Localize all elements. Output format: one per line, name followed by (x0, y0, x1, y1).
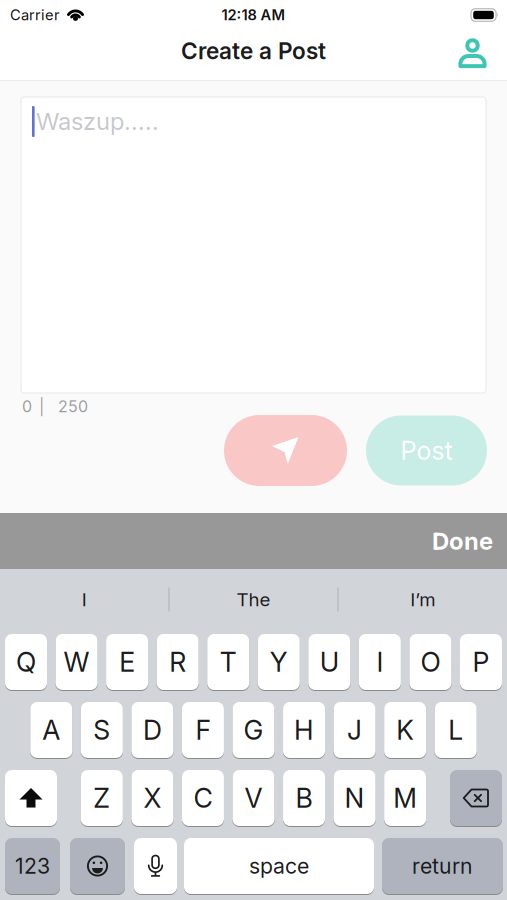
staticText: Post (400, 436, 452, 465)
staticText: J (347, 714, 362, 746)
button[interactable]: S (81, 702, 123, 758)
button[interactable]: M (384, 770, 426, 826)
staticText: Q (16, 646, 36, 678)
button[interactable]: B (283, 770, 325, 826)
button[interactable]: Post (366, 415, 487, 485)
staticText: X (143, 782, 161, 814)
staticText: Carrier (10, 6, 60, 24)
button[interactable]: Delete (450, 770, 502, 826)
staticText: return (412, 853, 473, 879)
staticText: N (345, 782, 365, 814)
button[interactable]: D (131, 702, 173, 758)
staticText: V (244, 782, 262, 814)
button[interactable]: W (56, 634, 98, 690)
button[interactable]: Done (432, 527, 493, 555)
staticText: I (82, 588, 87, 610)
staticText: U (320, 646, 339, 678)
button[interactable]: F (182, 702, 224, 758)
staticText: 123 (15, 853, 50, 879)
staticText: Waszup..... (36, 107, 159, 135)
staticText: R (169, 646, 186, 678)
button[interactable]: H (283, 702, 325, 758)
button[interactable]: Q (5, 634, 47, 690)
button[interactable]: Y (258, 634, 300, 690)
button[interactable]: Numbers (5, 838, 60, 894)
staticText: D (143, 714, 162, 746)
button[interactable]: Emoji (70, 838, 125, 894)
staticText: B (295, 782, 312, 814)
button[interactable]: P (460, 634, 502, 690)
button[interactable]: A (30, 702, 72, 758)
staticText: T (220, 646, 237, 678)
button[interactable]: Dictation (134, 838, 177, 894)
staticText: O (420, 646, 440, 678)
staticText: I (376, 646, 383, 678)
button[interactable]: N (334, 770, 376, 826)
button[interactable]: Z (81, 770, 123, 826)
staticText: I’m (410, 588, 435, 610)
staticText: C (193, 782, 212, 814)
staticText: Z (93, 782, 110, 814)
staticText: S (93, 714, 110, 746)
staticText: 250 (58, 397, 88, 416)
staticText: F (195, 714, 210, 746)
staticText: Y (270, 646, 288, 678)
staticText: G (243, 714, 263, 746)
button[interactable]: J (334, 702, 376, 758)
staticText: W (64, 646, 90, 678)
button[interactable]: Profile (458, 37, 487, 68)
button[interactable]: C (182, 770, 224, 826)
button[interactable]: T (207, 634, 249, 690)
staticText: | (39, 397, 44, 416)
button[interactable]: X (131, 770, 173, 826)
button[interactable]: K (384, 702, 426, 758)
staticText: L (448, 714, 463, 746)
staticText: Done (432, 527, 493, 555)
button[interactable]: G (232, 702, 274, 758)
staticText: A (42, 714, 60, 746)
staticText: 12:18 AM (221, 6, 285, 24)
staticText: P (472, 646, 489, 678)
staticText: Create a Post (181, 38, 326, 64)
button[interactable]: L (435, 702, 477, 758)
button[interactable]: space (184, 838, 374, 894)
button[interactable]: I (359, 634, 401, 690)
button[interactable]: U (308, 634, 350, 690)
button[interactable]: O (409, 634, 451, 690)
staticText: M (393, 782, 417, 814)
staticText: The (236, 588, 270, 610)
button[interactable]: Shift (5, 770, 57, 826)
button[interactable]: I’m (338, 569, 507, 630)
button[interactable]: Send (224, 415, 347, 486)
button[interactable]: return (382, 838, 503, 894)
button[interactable]: The (169, 569, 337, 630)
button[interactable]: E (106, 634, 148, 690)
staticText: K (396, 714, 414, 746)
button[interactable]: I (0, 569, 168, 630)
staticText: space (249, 853, 309, 879)
staticText: H (294, 714, 314, 746)
staticText: E (119, 646, 135, 678)
button[interactable]: V (232, 770, 274, 826)
button[interactable]: R (157, 634, 199, 690)
staticText: 0 (22, 397, 32, 416)
